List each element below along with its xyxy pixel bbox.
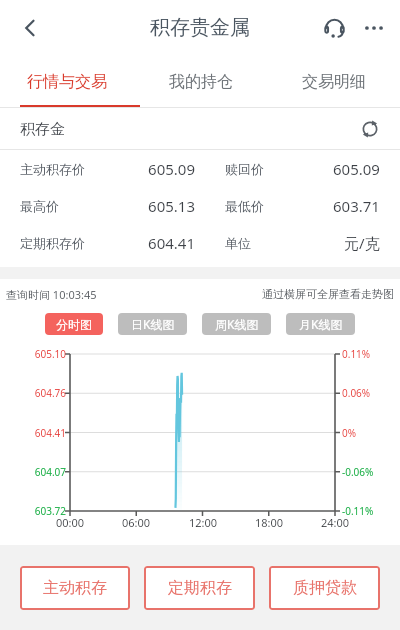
staticText: 603.71 (333, 196, 380, 216)
button[interactable]: 分时图 (45, 313, 103, 335)
staticText: 周K线图 (215, 316, 259, 332)
staticText: 赎回价 (225, 161, 264, 177)
staticText: 月K线图 (299, 316, 343, 332)
staticText: -0.11% (342, 504, 374, 518)
button[interactable]: 交易明细 (267, 55, 400, 108)
staticText: 交易明细 (302, 72, 366, 92)
staticText: 605.09 (125, 159, 195, 179)
staticText: 单位 (225, 235, 251, 251)
staticText: 605.10 (6, 347, 66, 361)
staticText: 日K线图 (131, 316, 175, 332)
staticText: 0.11% (342, 347, 371, 361)
staticText: 定期积存价 (20, 235, 85, 251)
staticText: 00:00 (50, 515, 90, 530)
button[interactable]: 主动积存 (20, 566, 130, 610)
staticText: 最低价 (225, 198, 264, 214)
staticText: 0% (342, 426, 357, 440)
staticText: 分时图 (56, 317, 92, 332)
staticText: 605.09 (333, 159, 380, 179)
staticText: 604.41 (6, 426, 66, 440)
button[interactable]: 定期积存 (144, 566, 255, 610)
staticText: 定期积存 (168, 578, 232, 598)
staticText: 积存贵金属 (150, 15, 250, 40)
staticText: 604.07 (6, 465, 66, 479)
button[interactable]: 月K线图 (286, 313, 355, 335)
staticText: 12:00 (183, 515, 223, 530)
staticText: 主动积存 (43, 578, 107, 598)
staticText: 我的持仓 (169, 72, 233, 92)
staticText: 0.06% (342, 386, 371, 400)
button[interactable]: More options (354, 8, 394, 48)
staticText: 最高价 (20, 198, 59, 214)
staticText: 18:00 (249, 515, 289, 530)
staticText: 06:00 (116, 515, 156, 530)
button[interactable]: 我的持仓 (134, 55, 267, 108)
staticText: 查询时间 10:03:45 (6, 287, 97, 302)
staticText: 605.13 (125, 196, 195, 216)
staticText: -0.06% (342, 465, 374, 479)
staticText: 元/克 (344, 233, 380, 253)
button[interactable]: Refresh (352, 111, 388, 147)
staticText: 行情与交易 (27, 72, 107, 92)
button[interactable]: 行情与交易 (0, 55, 134, 108)
staticText: 质押贷款 (293, 578, 357, 598)
button[interactable]: 日K线图 (118, 313, 187, 335)
staticText: 24:00 (315, 515, 355, 530)
staticText: 604.41 (125, 233, 195, 253)
staticText: 通过横屏可全屏查看走势图 (262, 287, 394, 301)
staticText: 603.72 (6, 504, 66, 518)
staticText: 积存金 (20, 120, 65, 139)
button[interactable]: 质押贷款 (269, 566, 380, 610)
button[interactable]: Customer service (314, 8, 354, 48)
button[interactable]: Back (8, 6, 52, 50)
button[interactable]: 周K线图 (202, 313, 271, 335)
staticText: 主动积存价 (20, 161, 85, 177)
staticText: 604.76 (6, 386, 66, 400)
